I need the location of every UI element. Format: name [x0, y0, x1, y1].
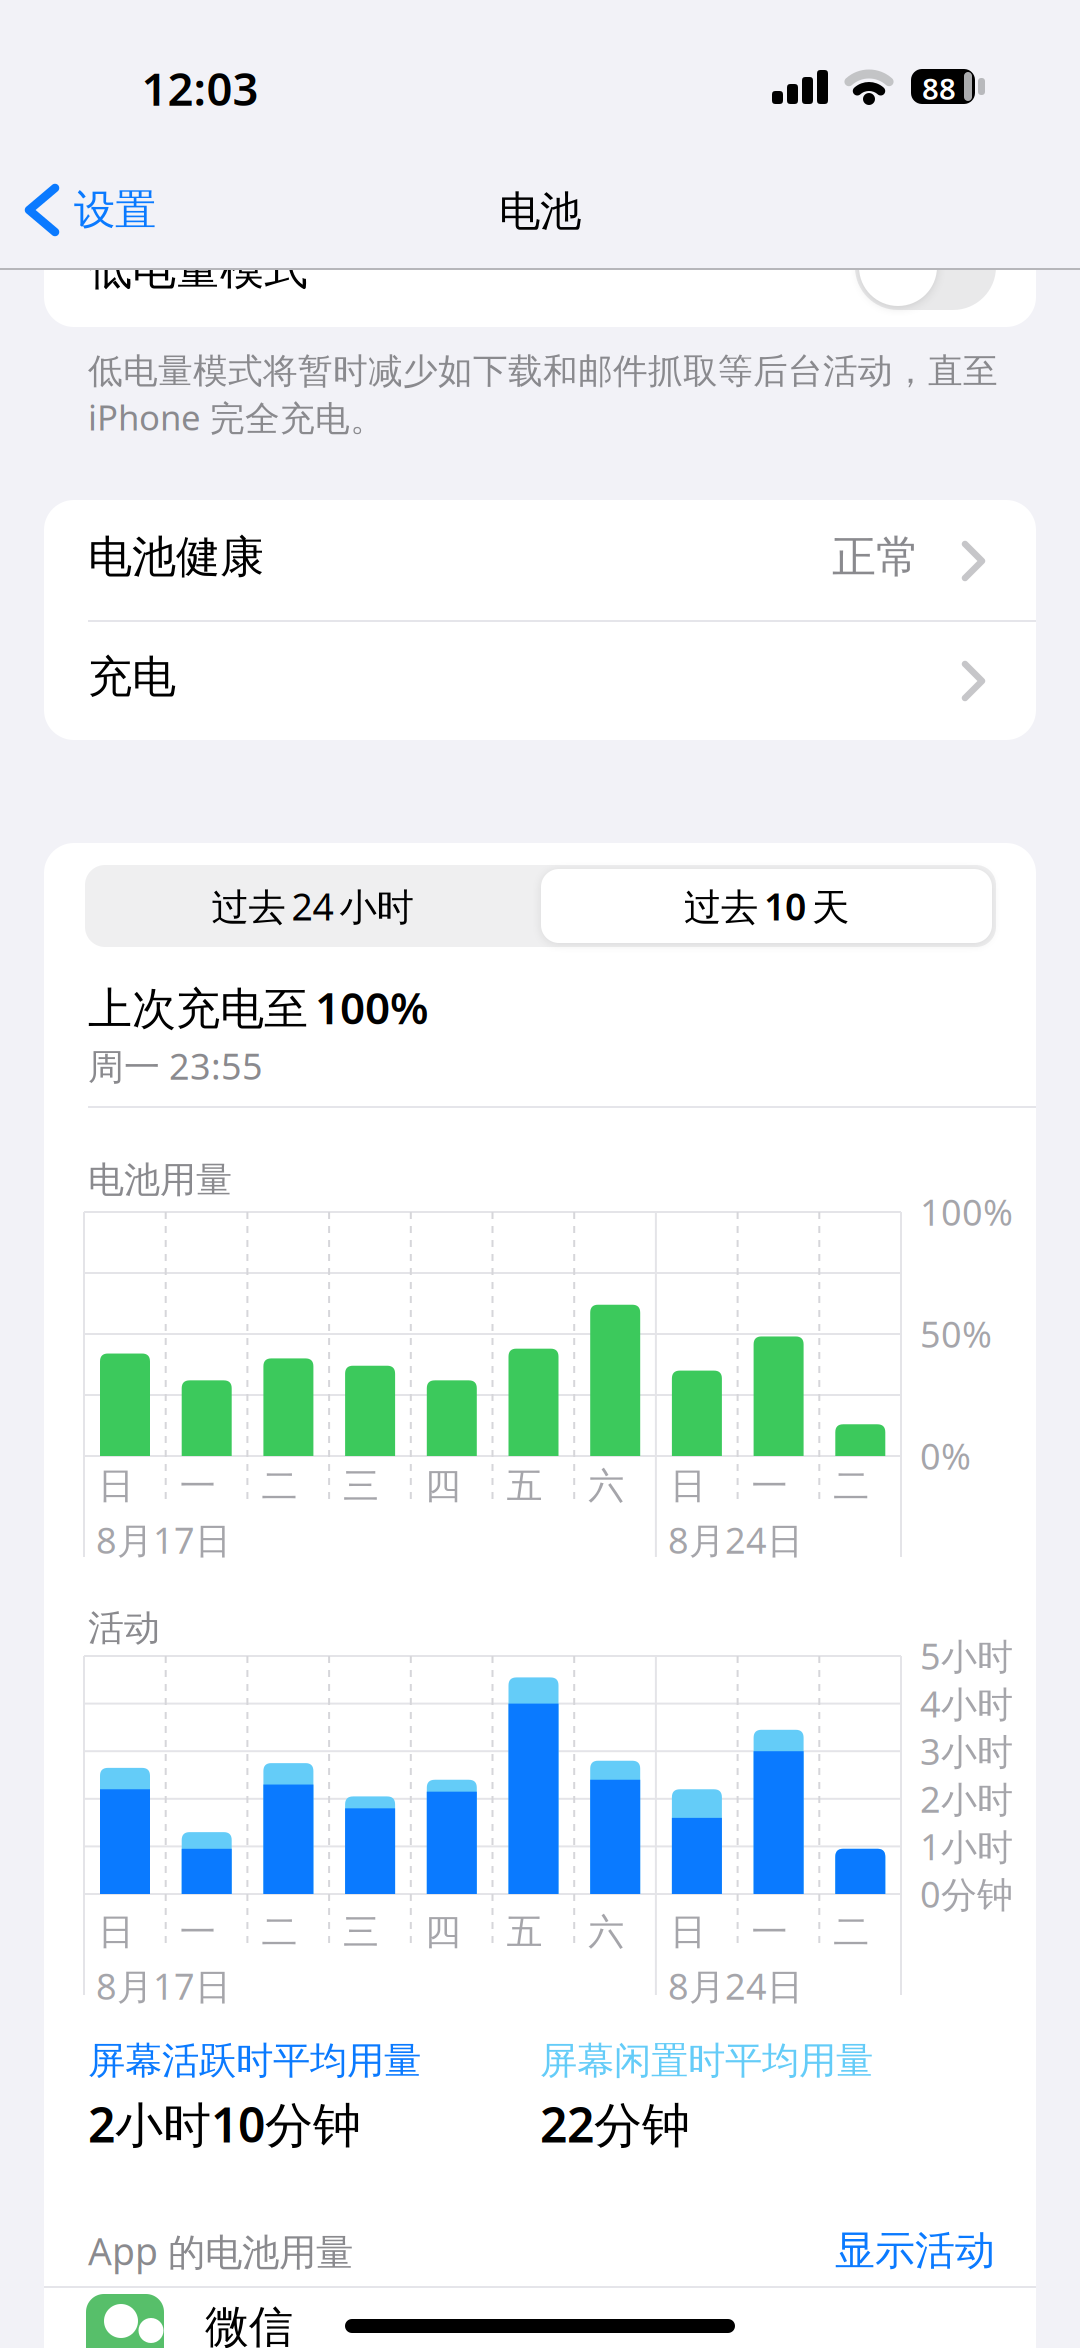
staticText: 电池健康 [88, 530, 264, 584]
staticText: App 的电池用量 [88, 2226, 353, 2276]
staticText: 8月17日 [96, 1962, 231, 2010]
staticText: 四 [425, 1910, 461, 1954]
staticText: 2小时10分钟 [88, 2092, 361, 2156]
staticText: 显示活动 [835, 2226, 995, 2275]
staticText: 正常 [832, 530, 920, 584]
staticText: 五 [506, 1464, 542, 1508]
button[interactable]: 低电量模式 [44, 230, 1036, 327]
staticText: 日 [98, 1464, 134, 1508]
staticText: 三 [343, 1910, 379, 1954]
staticText: 三 [343, 1464, 379, 1508]
staticText: 0% [920, 1432, 971, 1480]
staticText: 1小时 [920, 1822, 1013, 1870]
staticText: 一 [752, 1464, 788, 1508]
staticText: 日 [670, 1910, 706, 1954]
button[interactable]: 过去 24 小时 [85, 865, 540, 947]
staticText: 5小时 [920, 1632, 1013, 1680]
staticText: 低电量模式 [88, 242, 308, 296]
staticText: 3小时 [920, 1727, 1013, 1775]
staticText: 日 [670, 1464, 706, 1508]
staticText: 50% [920, 1310, 992, 1358]
staticText: 六 [588, 1464, 624, 1508]
staticText: 过去 10 天 [684, 881, 849, 931]
staticText: 屏幕闲置时平均用量 [540, 2038, 873, 2084]
staticText: 活动 [88, 1606, 160, 1650]
staticText: 微信 [205, 2300, 293, 2348]
staticText: 二 [261, 1910, 297, 1954]
staticText: 五 [506, 1910, 542, 1954]
staticText: 二 [833, 1464, 869, 1508]
staticText: 8月17日 [96, 1516, 231, 1564]
staticText: 一 [752, 1910, 788, 1954]
staticText: 电池用量 [88, 1158, 232, 1202]
staticText: 一 [180, 1910, 216, 1954]
staticText: 二 [833, 1910, 869, 1954]
staticText: 屏幕活跃时平均用量 [88, 2038, 421, 2084]
button[interactable]: 设置 [24, 184, 156, 236]
staticText: 88 [922, 69, 956, 108]
button[interactable]: 充电 [44, 620, 1036, 740]
staticText: 六 [588, 1910, 624, 1954]
button[interactable]: 过去 10 天 [541, 869, 992, 943]
staticText: 二 [261, 1464, 297, 1508]
staticText: 充电 [88, 650, 176, 704]
button[interactable]: 电池健康 [44, 500, 1036, 620]
staticText: 电池 [499, 186, 581, 237]
staticText: 12:03 [141, 58, 258, 118]
staticText: 2小时 [920, 1775, 1013, 1823]
staticText: 22分钟 [540, 2092, 690, 2156]
staticText: 8月24日 [668, 1962, 803, 2010]
staticText: 设置 [74, 185, 156, 235]
staticText: 8月24日 [668, 1516, 803, 1564]
staticText: 上次充电至 100% [88, 978, 429, 1036]
staticText: 4小时 [920, 1680, 1013, 1727]
staticText: 0分钟 [920, 1870, 1013, 1918]
staticText: 四 [425, 1464, 461, 1508]
staticText: 一 [180, 1464, 216, 1508]
staticText: 低电量模式将暂时减少如下载和邮件抓取等后台活动，直至 [88, 350, 998, 393]
button[interactable]: 微信 [44, 2286, 1036, 2348]
staticText: 过去 24 小时 [211, 881, 413, 931]
staticText: 周一 23:55 [88, 1042, 263, 1090]
button[interactable]: 显示活动 [695, 2226, 995, 2275]
staticText: 日 [98, 1910, 134, 1954]
staticText: iPhone 完全充电。 [88, 394, 385, 440]
staticText: 100% [920, 1188, 1013, 1236]
